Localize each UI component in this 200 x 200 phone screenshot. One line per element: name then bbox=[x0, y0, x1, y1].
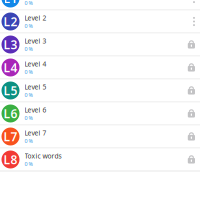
button[interactable]: L2 bbox=[0, 10, 200, 33]
button[interactable]: L3 bbox=[0, 33, 200, 56]
button[interactable]: L6 bbox=[0, 102, 200, 125]
staticText: L5 bbox=[3, 82, 17, 98]
staticText: Level 4 bbox=[24, 59, 46, 68]
staticText: 0 % bbox=[24, 91, 32, 98]
staticText: 0 % bbox=[24, 22, 32, 29]
staticText: Toxic words bbox=[24, 151, 61, 160]
staticText: Level 2 bbox=[24, 13, 46, 22]
button[interactable]: L8 bbox=[0, 148, 200, 171]
staticText: L3 bbox=[3, 36, 17, 52]
button[interactable]: More options bbox=[193, 0, 195, 3]
button[interactable]: L7 bbox=[0, 125, 200, 148]
staticText: Level 3 bbox=[24, 36, 46, 45]
staticText: Level 6 bbox=[24, 105, 46, 114]
staticText: L1 bbox=[3, 0, 17, 6]
button[interactable]: L1 bbox=[0, 0, 200, 10]
staticText: 0 % bbox=[24, 0, 32, 6]
staticText: 0 % bbox=[24, 68, 32, 75]
staticText: L8 bbox=[3, 151, 17, 167]
staticText: L6 bbox=[3, 105, 17, 121]
staticText: 0 % bbox=[24, 114, 32, 121]
staticText: Level 5 bbox=[24, 82, 46, 91]
button[interactable]: L5 bbox=[0, 79, 200, 102]
staticText: 0 % bbox=[24, 137, 32, 144]
button[interactable]: L4 bbox=[0, 56, 200, 79]
staticText: L7 bbox=[3, 128, 17, 144]
staticText: 0 % bbox=[24, 45, 32, 52]
staticText: L2 bbox=[3, 13, 17, 29]
staticText: Level 7 bbox=[24, 128, 46, 137]
button[interactable]: More options bbox=[193, 17, 195, 26]
staticText: L4 bbox=[3, 59, 17, 75]
staticText: 0 % bbox=[24, 160, 32, 167]
